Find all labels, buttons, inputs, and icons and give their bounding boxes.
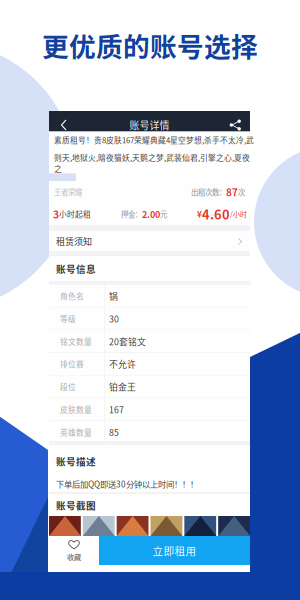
staticText: 铭文数量 xyxy=(60,336,92,347)
staticText: 立即租用 xyxy=(152,543,196,558)
staticText: 账号描述 xyxy=(56,454,96,468)
staticText: 4.60 xyxy=(202,205,230,223)
staticText: 排位赛 xyxy=(60,358,84,370)
staticText: 167 xyxy=(109,403,124,416)
staticText: 收藏 xyxy=(67,551,81,562)
staticText: 押金： xyxy=(121,209,142,219)
staticText: 87 xyxy=(226,185,238,199)
staticText: 段位 xyxy=(60,381,76,392)
staticText: 元 xyxy=(160,209,167,219)
staticText: 等级 xyxy=(60,313,76,324)
staticText: 铂金王 xyxy=(109,380,136,393)
staticText: 85 xyxy=(109,426,119,438)
staticText: 下单后加QQ即送30分钟以上时间！！！ xyxy=(56,478,198,490)
staticText: 王者荣耀 xyxy=(54,187,82,197)
button[interactable]: 租赁须知 xyxy=(49,231,250,251)
staticText: 账号信息 xyxy=(56,261,96,275)
button[interactable]: 立即租用 xyxy=(99,536,250,565)
staticText: 账号截图 xyxy=(56,498,96,512)
staticText: 则天,地狱火,暗夜猫妖,天鹅之梦,武装仙君,引擎之心,夏夜之 xyxy=(54,152,250,174)
staticText: 账号详情 xyxy=(129,118,169,132)
button[interactable]: Share xyxy=(225,112,245,138)
staticText: 小时起租 xyxy=(59,208,91,220)
staticText: 角色名 xyxy=(60,290,84,301)
staticText: ¥ xyxy=(197,208,202,220)
staticText: 20套铭文 xyxy=(109,335,146,348)
staticText: 出租次数： xyxy=(191,187,226,197)
staticText: 次 xyxy=(238,187,245,197)
staticText: 锅 xyxy=(109,289,118,302)
staticText: 不允许 xyxy=(109,358,136,370)
staticText: 30 xyxy=(109,312,119,325)
button[interactable]: 收藏 xyxy=(49,536,99,565)
staticText: 2.00 xyxy=(142,207,160,220)
staticText: 更优质的账号选择 xyxy=(42,26,258,64)
staticText: 皮肤数量 xyxy=(60,404,92,415)
staticText: 素质租号！贵8皮肤167荣耀典藏4星空梦想,杀手不太冷,武 xyxy=(54,134,254,145)
staticText: /小时 xyxy=(230,209,247,219)
staticText: 英雄数量 xyxy=(60,426,92,438)
staticText: 租赁须知 xyxy=(56,234,92,247)
staticText: 3 xyxy=(53,206,59,222)
staticText: 梦,天魔撩乱,梅西,地狱之眼. xyxy=(54,180,150,192)
button[interactable]: Back xyxy=(54,112,74,138)
